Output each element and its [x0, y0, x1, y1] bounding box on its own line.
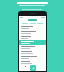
button[interactable] — [19, 30, 46, 35]
button[interactable] — [19, 55, 46, 60]
button[interactable] — [19, 35, 46, 40]
button[interactable] — [19, 60, 46, 65]
button[interactable] — [19, 45, 46, 50]
button[interactable] — [19, 50, 46, 55]
button[interactable] — [19, 25, 46, 30]
button[interactable]: Add — [30, 65, 36, 71]
button[interactable] — [19, 40, 46, 45]
